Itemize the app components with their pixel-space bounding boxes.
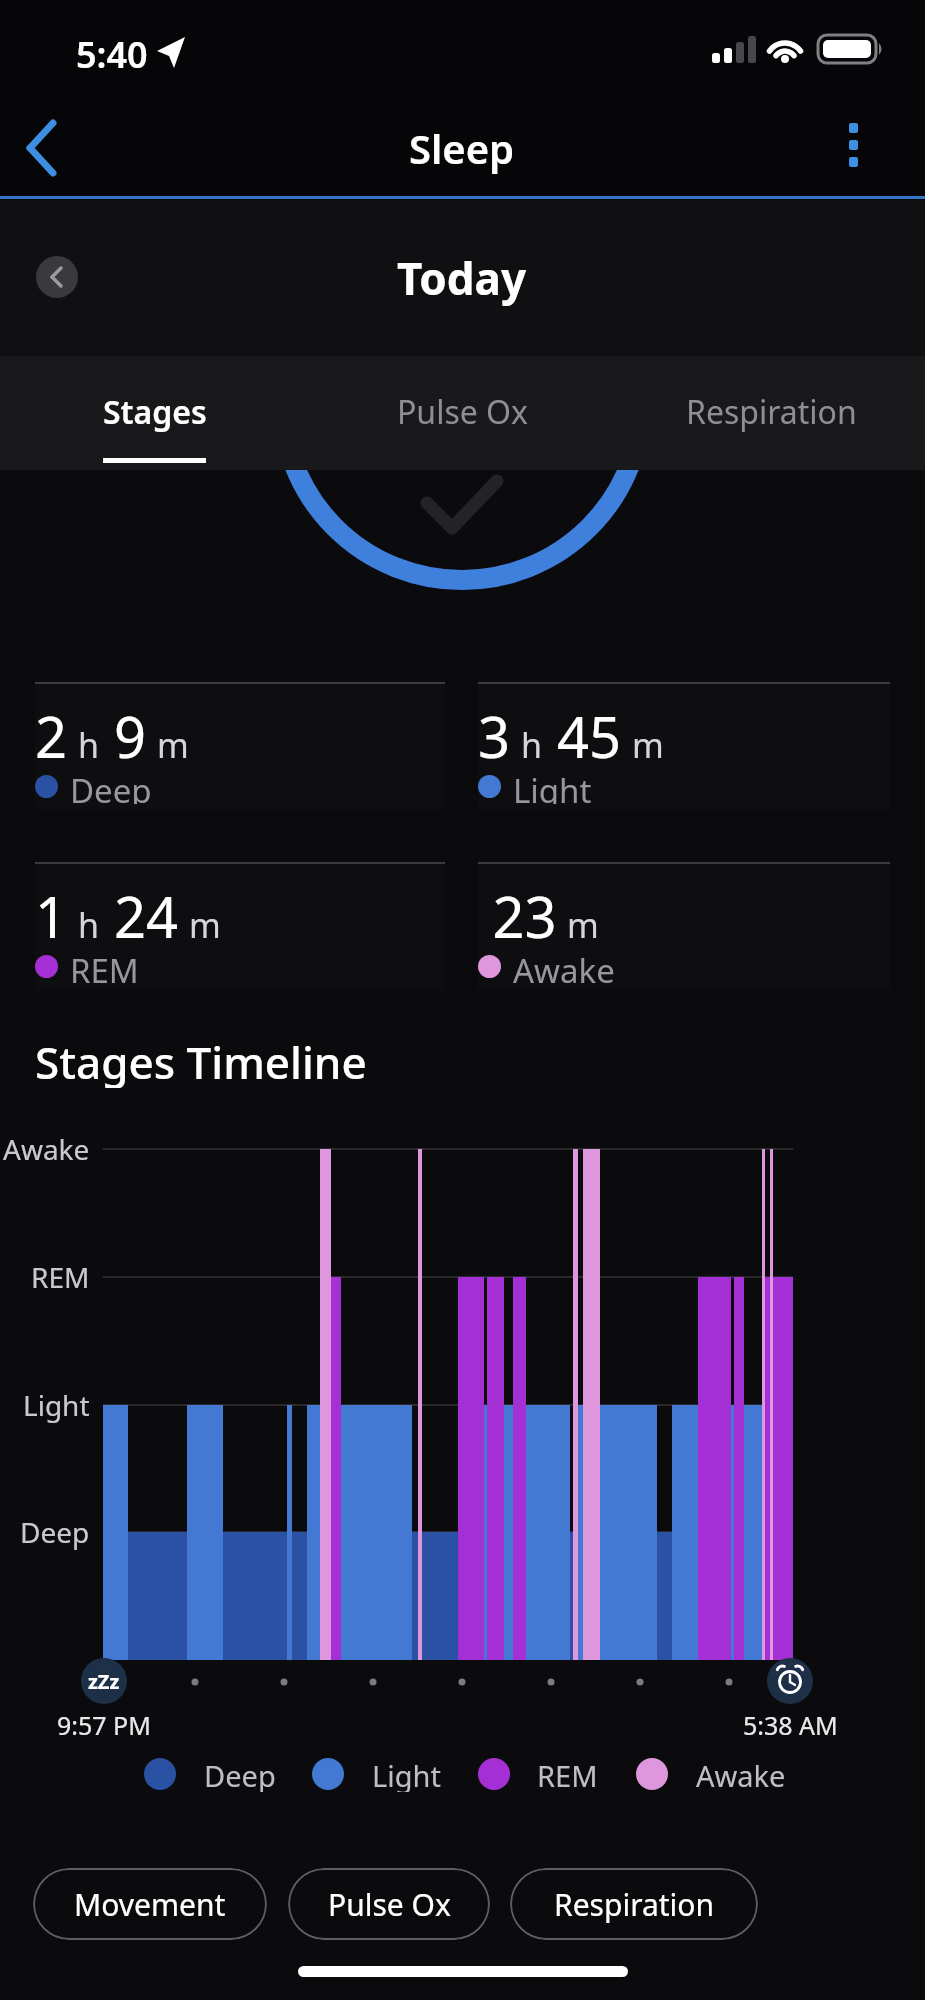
- button[interactable]: Stages: [80, 388, 230, 436]
- button[interactable]: [478, 682, 890, 810]
- staticText: Respiration: [554, 1884, 715, 1925]
- button[interactable]: Pulse Ox: [380, 388, 546, 436]
- staticText: h: [521, 722, 543, 768]
- staticText: 23: [478, 878, 557, 940]
- staticText: REM: [31, 1258, 90, 1296]
- staticText: Stages Timeline: [35, 1032, 367, 1088]
- button[interactable]: zZz: [81, 1658, 127, 1704]
- staticText: m: [157, 722, 189, 768]
- button[interactable]: [478, 862, 890, 990]
- staticText: 24: [114, 878, 179, 940]
- staticText: Today: [397, 248, 527, 306]
- staticText: Light: [513, 768, 592, 804]
- staticText: Deep: [70, 768, 152, 804]
- button[interactable]: Respiration: [670, 388, 872, 436]
- staticText: Deep: [20, 1513, 90, 1551]
- staticText: Awake: [513, 948, 615, 984]
- button[interactable]: [35, 862, 445, 990]
- staticText: m: [567, 902, 599, 948]
- staticText: h: [78, 902, 100, 948]
- staticText: 9: [114, 698, 147, 760]
- staticText: Sleep: [409, 121, 515, 175]
- staticText: REM: [70, 948, 139, 984]
- staticText: zZz: [88, 1668, 120, 1695]
- staticText: Pulse Ox: [397, 390, 529, 434]
- staticText: h: [78, 722, 100, 768]
- staticText: Movement: [74, 1884, 226, 1925]
- button[interactable]: Respiration: [510, 1868, 758, 1940]
- staticText: 1: [35, 878, 68, 940]
- staticText: 2: [35, 698, 68, 760]
- button[interactable]: [36, 256, 78, 298]
- staticText: 45: [557, 698, 622, 760]
- staticText: Awake: [696, 1756, 786, 1792]
- staticText: m: [632, 722, 664, 768]
- staticText: 5:38 AM: [743, 1708, 838, 1742]
- button[interactable]: [10, 110, 80, 190]
- button[interactable]: [820, 110, 890, 190]
- staticText: m: [189, 902, 221, 948]
- button[interactable]: [767, 1658, 813, 1704]
- button[interactable]: Movement: [33, 1868, 267, 1940]
- button[interactable]: [35, 682, 445, 810]
- staticText: Stages: [103, 390, 207, 434]
- staticText: Light: [23, 1386, 90, 1424]
- button[interactable]: Pulse Ox: [288, 1868, 490, 1940]
- staticText: Light: [372, 1756, 441, 1792]
- staticText: Deep: [204, 1756, 276, 1792]
- staticText: Awake: [3, 1130, 90, 1168]
- staticText: 5:40: [76, 30, 148, 72]
- staticText: REM: [537, 1756, 598, 1792]
- staticText: Respiration: [686, 390, 857, 434]
- staticText: 3: [478, 698, 511, 760]
- staticText: Pulse Ox: [328, 1884, 451, 1925]
- staticText: 9:57 PM: [57, 1708, 151, 1742]
